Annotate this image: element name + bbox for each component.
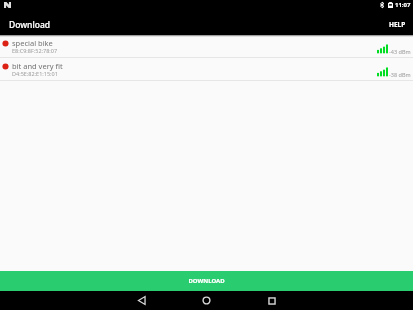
button[interactable]: HELP [379, 14, 413, 35]
button[interactable]: bit and very fit [0, 58, 413, 81]
staticText: E8:C9:8F:52:78:07 [12, 47, 58, 54]
staticText: Download [9, 19, 51, 31]
staticText: -38 dBm [389, 71, 411, 78]
button[interactable]: special bike [0, 35, 413, 58]
staticText: 11:07 [395, 1, 411, 9]
other: Notification [4, 2, 11, 8]
staticText: DOWNLOAD [188, 277, 225, 285]
button[interactable]: Home [199, 291, 214, 310]
staticText: HELP [389, 20, 406, 29]
staticText: D4:5E:82:E1:15:01 [12, 70, 58, 77]
button[interactable]: DOWNLOAD [0, 271, 413, 291]
staticText: -43 dBm [389, 48, 411, 55]
button[interactable]: Recent apps [264, 291, 279, 310]
staticText: special bike [12, 38, 53, 48]
button[interactable]: Back [134, 291, 149, 310]
staticText: bit and very fit [12, 61, 63, 71]
